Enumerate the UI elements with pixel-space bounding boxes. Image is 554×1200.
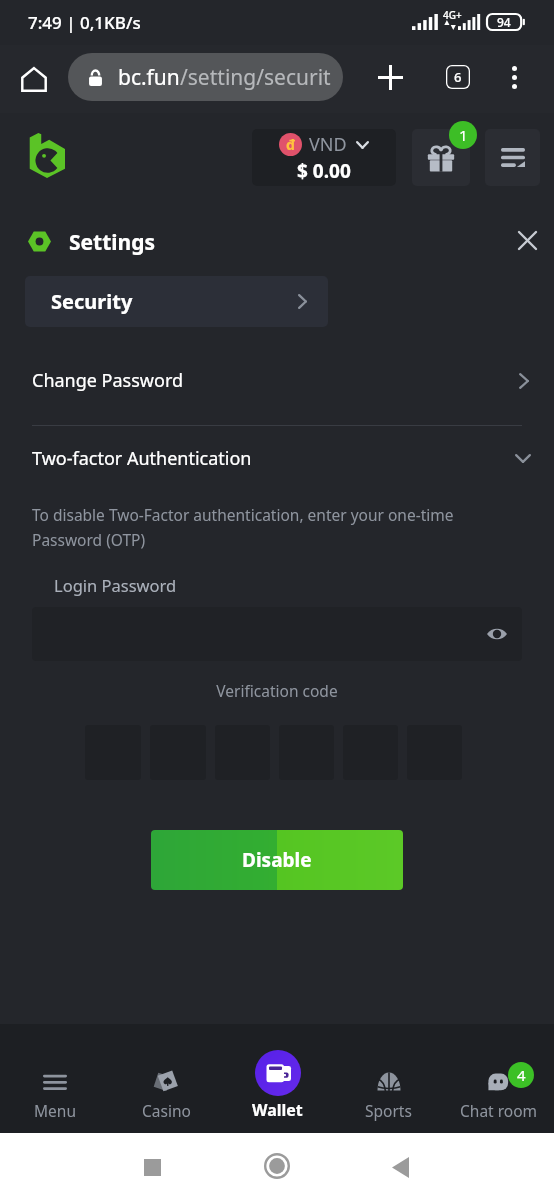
staticText: Change Password: [32, 368, 184, 393]
staticText: 4G+: [443, 8, 462, 22]
staticText: đ: [286, 135, 296, 154]
staticText: Sports: [365, 1100, 412, 1121]
staticText: Menu: [34, 1100, 76, 1121]
staticText: Disable: [242, 847, 312, 873]
button[interactable]: đ: [252, 129, 396, 186]
button[interactable]: Security: [25, 276, 328, 327]
button[interactable]: Change Password: [0, 351, 554, 410]
staticText: Chat room: [460, 1100, 538, 1121]
staticText: 4: [517, 1065, 526, 1085]
button[interactable]: Disable: [151, 830, 403, 890]
button[interactable]: Back: [376, 1143, 424, 1191]
staticText: 1: [459, 125, 468, 145]
button[interactable]: Menu: [485, 129, 540, 186]
button[interactable]: bc.fun: [68, 53, 343, 101]
button[interactable]: New tab: [366, 53, 414, 101]
staticText: VND: [309, 132, 347, 157]
staticText: 6: [454, 68, 462, 86]
staticText: To disable Two-Factor authentication, en…: [32, 504, 454, 550]
staticText: Two-factor Authentication: [32, 446, 252, 471]
button[interactable]: Home: [253, 1142, 301, 1190]
staticText: Login Password: [54, 574, 177, 596]
button[interactable]: Show password: [484, 621, 510, 647]
button[interactable]: Close: [506, 219, 548, 261]
button[interactable]: More options: [490, 53, 538, 101]
button[interactable]: Recents: [128, 1143, 176, 1191]
staticText: Security: [51, 288, 133, 315]
staticText: 7:49 | 0,1KB/s: [28, 11, 141, 34]
staticText: 94: [497, 14, 511, 30]
staticText: /setting/securit: [180, 63, 331, 92]
staticText: Casino: [142, 1100, 191, 1121]
button[interactable]: Wallet: [231, 1038, 324, 1133]
button[interactable]: Sports: [340, 1056, 436, 1122]
staticText: bc.fun: [118, 63, 180, 92]
button[interactable]: Home: [10, 55, 58, 103]
staticText: Verification code: [0, 680, 554, 701]
button[interactable]: Two-factor Authentication: [0, 429, 554, 488]
button[interactable]: Tabs: [434, 53, 482, 101]
staticText: $ 0.00: [297, 158, 351, 184]
button[interactable]: Show password: [32, 607, 522, 661]
button[interactable]: Gifts: [412, 129, 470, 186]
button[interactable]: Chat room: [451, 1056, 547, 1122]
staticText: Wallet: [252, 1099, 303, 1121]
staticText: Settings: [69, 228, 156, 257]
button[interactable]: Menu: [7, 1056, 103, 1122]
button[interactable]: Casino: [118, 1056, 214, 1122]
button[interactable]: BC home: [18, 125, 76, 185]
